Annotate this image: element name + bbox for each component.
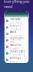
staticText: 12 items (10, 34, 22, 37)
staticText: Account (10, 60, 21, 63)
staticText: Overview (10, 17, 21, 21)
staticText: Settings (10, 56, 21, 60)
staticText: 5 saved (10, 47, 20, 50)
staticText: Everything you need (4, 0, 29, 9)
button[interactable]: Downloads (4, 50, 28, 57)
button[interactable]: Highlight (4, 37, 28, 44)
button[interactable]: Sessions (4, 24, 28, 31)
staticText: Downloads (10, 50, 25, 53)
staticText: Favourite (10, 43, 22, 47)
staticText: Live now (10, 21, 22, 24)
staticText: New (10, 40, 15, 44)
staticText: Updated (10, 27, 22, 31)
staticText: Highlight (10, 37, 24, 40)
staticText: Saved (10, 30, 17, 34)
button[interactable]: Favourite (4, 44, 28, 50)
button[interactable]: Settings (4, 57, 28, 63)
button[interactable]: Saved (4, 31, 28, 37)
staticText: 2 pending (10, 53, 26, 57)
staticText: Sessions (10, 24, 21, 27)
staticText: in one place (6, 9, 26, 14)
button[interactable]: Overview (4, 18, 28, 24)
